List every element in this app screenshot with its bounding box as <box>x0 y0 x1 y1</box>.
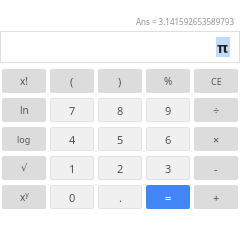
button[interactable]: 3 <box>146 156 190 180</box>
staticText: π <box>217 37 229 57</box>
button[interactable]: 0 <box>50 185 94 209</box>
staticText: % <box>164 74 173 88</box>
button[interactable]: ) <box>98 69 142 93</box>
button[interactable]: log <box>2 127 46 151</box>
button[interactable]: ( <box>50 69 94 93</box>
staticText: 5 <box>117 132 124 147</box>
button[interactable]: ÷ <box>194 98 238 122</box>
button[interactable]: √ <box>2 156 46 180</box>
button[interactable]: . <box>98 185 142 209</box>
staticText: 6 <box>165 132 172 147</box>
button[interactable]: 6 <box>146 127 190 151</box>
button[interactable]: ln <box>2 98 46 122</box>
staticText: 8 <box>117 103 124 118</box>
staticText: x! <box>20 74 28 88</box>
button[interactable]: 8 <box>98 98 142 122</box>
staticText: 7 <box>69 103 76 118</box>
button[interactable]: × <box>194 127 238 151</box>
staticText: ln <box>20 103 29 117</box>
staticText: = <box>165 190 172 205</box>
button[interactable]: 5 <box>98 127 142 151</box>
staticText: - <box>214 161 218 176</box>
staticText: xy <box>20 190 29 204</box>
button[interactable]: 2 <box>98 156 142 180</box>
button[interactable]: x! <box>2 69 46 93</box>
button[interactable]: 1 <box>50 156 94 180</box>
staticText: Ans = 3.141592653589793 <box>136 16 234 27</box>
staticText: CE <box>211 75 222 87</box>
staticText: × <box>213 132 220 147</box>
button[interactable]: % <box>146 69 190 93</box>
staticText: √ <box>21 162 28 174</box>
staticText: 9 <box>165 103 172 118</box>
button[interactable]: xy <box>2 185 46 209</box>
staticText: ) <box>118 74 122 89</box>
button[interactable]: + <box>194 185 238 209</box>
staticText: 4 <box>69 132 76 147</box>
button[interactable]: π <box>0 31 240 63</box>
button[interactable]: CE <box>194 69 238 93</box>
button[interactable]: - <box>194 156 238 180</box>
staticText: ( <box>70 74 74 89</box>
staticText: + <box>213 190 220 205</box>
staticText: 1 <box>69 161 76 176</box>
staticText: . <box>119 190 122 205</box>
staticText: 0 <box>69 190 76 205</box>
staticText: 3 <box>165 161 172 176</box>
button[interactable]: 9 <box>146 98 190 122</box>
staticText: log <box>17 133 31 145</box>
button[interactable]: = <box>146 185 190 209</box>
button[interactable]: 4 <box>50 127 94 151</box>
staticText: ÷ <box>213 103 220 118</box>
staticText: 2 <box>117 161 124 176</box>
button[interactable]: 7 <box>50 98 94 122</box>
